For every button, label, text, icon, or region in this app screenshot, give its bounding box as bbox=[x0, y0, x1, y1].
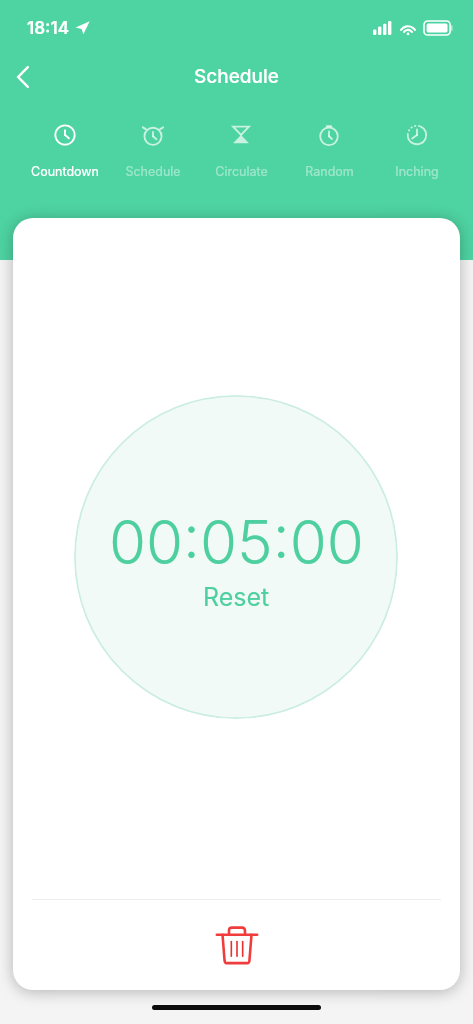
staticText: Schedule bbox=[125, 164, 181, 179]
button[interactable]: Countdown bbox=[21, 110, 109, 184]
staticText: Random bbox=[305, 164, 354, 179]
button[interactable]: Delete bbox=[209, 916, 265, 972]
button[interactable]: Schedule bbox=[109, 110, 197, 184]
button[interactable]: Circulate bbox=[197, 110, 285, 184]
staticText: Inching bbox=[395, 164, 439, 179]
button[interactable]: Inching bbox=[373, 110, 461, 184]
staticText: Circulate bbox=[215, 164, 268, 179]
button[interactable]: Random bbox=[285, 110, 373, 184]
button[interactable]: Back bbox=[0, 53, 47, 101]
staticText: Schedule bbox=[194, 65, 279, 88]
staticText: Reset bbox=[203, 582, 270, 612]
staticText: 18:14 bbox=[27, 18, 70, 39]
button[interactable]: 00:05:00 bbox=[74, 395, 398, 719]
staticText: Countdown bbox=[31, 164, 99, 179]
staticText: 00:05:00 bbox=[109, 506, 364, 579]
